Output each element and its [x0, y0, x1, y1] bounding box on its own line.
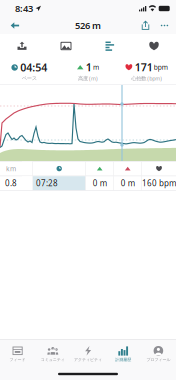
staticText: 171	[135, 60, 153, 74]
staticText: 04:54	[20, 60, 47, 75]
staticText: 07:28	[36, 178, 58, 188]
button[interactable]: Back	[4, 17, 26, 34]
staticText: 高度 (m)	[78, 75, 98, 82]
button[interactable]: Heart rate	[132, 34, 176, 58]
staticText: 0.8	[5, 178, 17, 188]
staticText: 160 bpm	[142, 178, 176, 188]
staticText: 0 m	[93, 178, 107, 188]
staticText: アクティビティ	[74, 357, 102, 362]
staticText: ペース	[22, 75, 37, 82]
staticText: フィード	[10, 357, 26, 362]
button[interactable]: Share	[136, 17, 155, 34]
staticText: コミュニティ	[41, 357, 65, 362]
staticText: 0 m	[121, 178, 135, 188]
staticText: 1	[86, 60, 92, 74]
staticText: 心拍数 (bpm)	[131, 75, 162, 82]
button[interactable]: アクティビティ	[70, 340, 106, 368]
button[interactable]: プロフィール	[141, 340, 176, 368]
staticText: プロフィール	[146, 357, 170, 362]
staticText: km	[6, 164, 16, 173]
staticText: 8:43	[15, 2, 33, 15]
button[interactable]: Photos	[44, 34, 88, 58]
button[interactable]: 計測履歴	[106, 340, 141, 368]
button[interactable]: Export	[0, 34, 44, 58]
staticText: bpm	[154, 63, 168, 72]
button[interactable]: Splits	[88, 34, 132, 58]
button[interactable]: フィード	[0, 340, 35, 368]
button[interactable]: コミュニティ	[35, 340, 70, 368]
staticText: m	[93, 63, 99, 72]
button[interactable]: More	[155, 17, 174, 34]
staticText: 計測履歴	[115, 357, 131, 362]
staticText: 526 m	[75, 19, 101, 32]
